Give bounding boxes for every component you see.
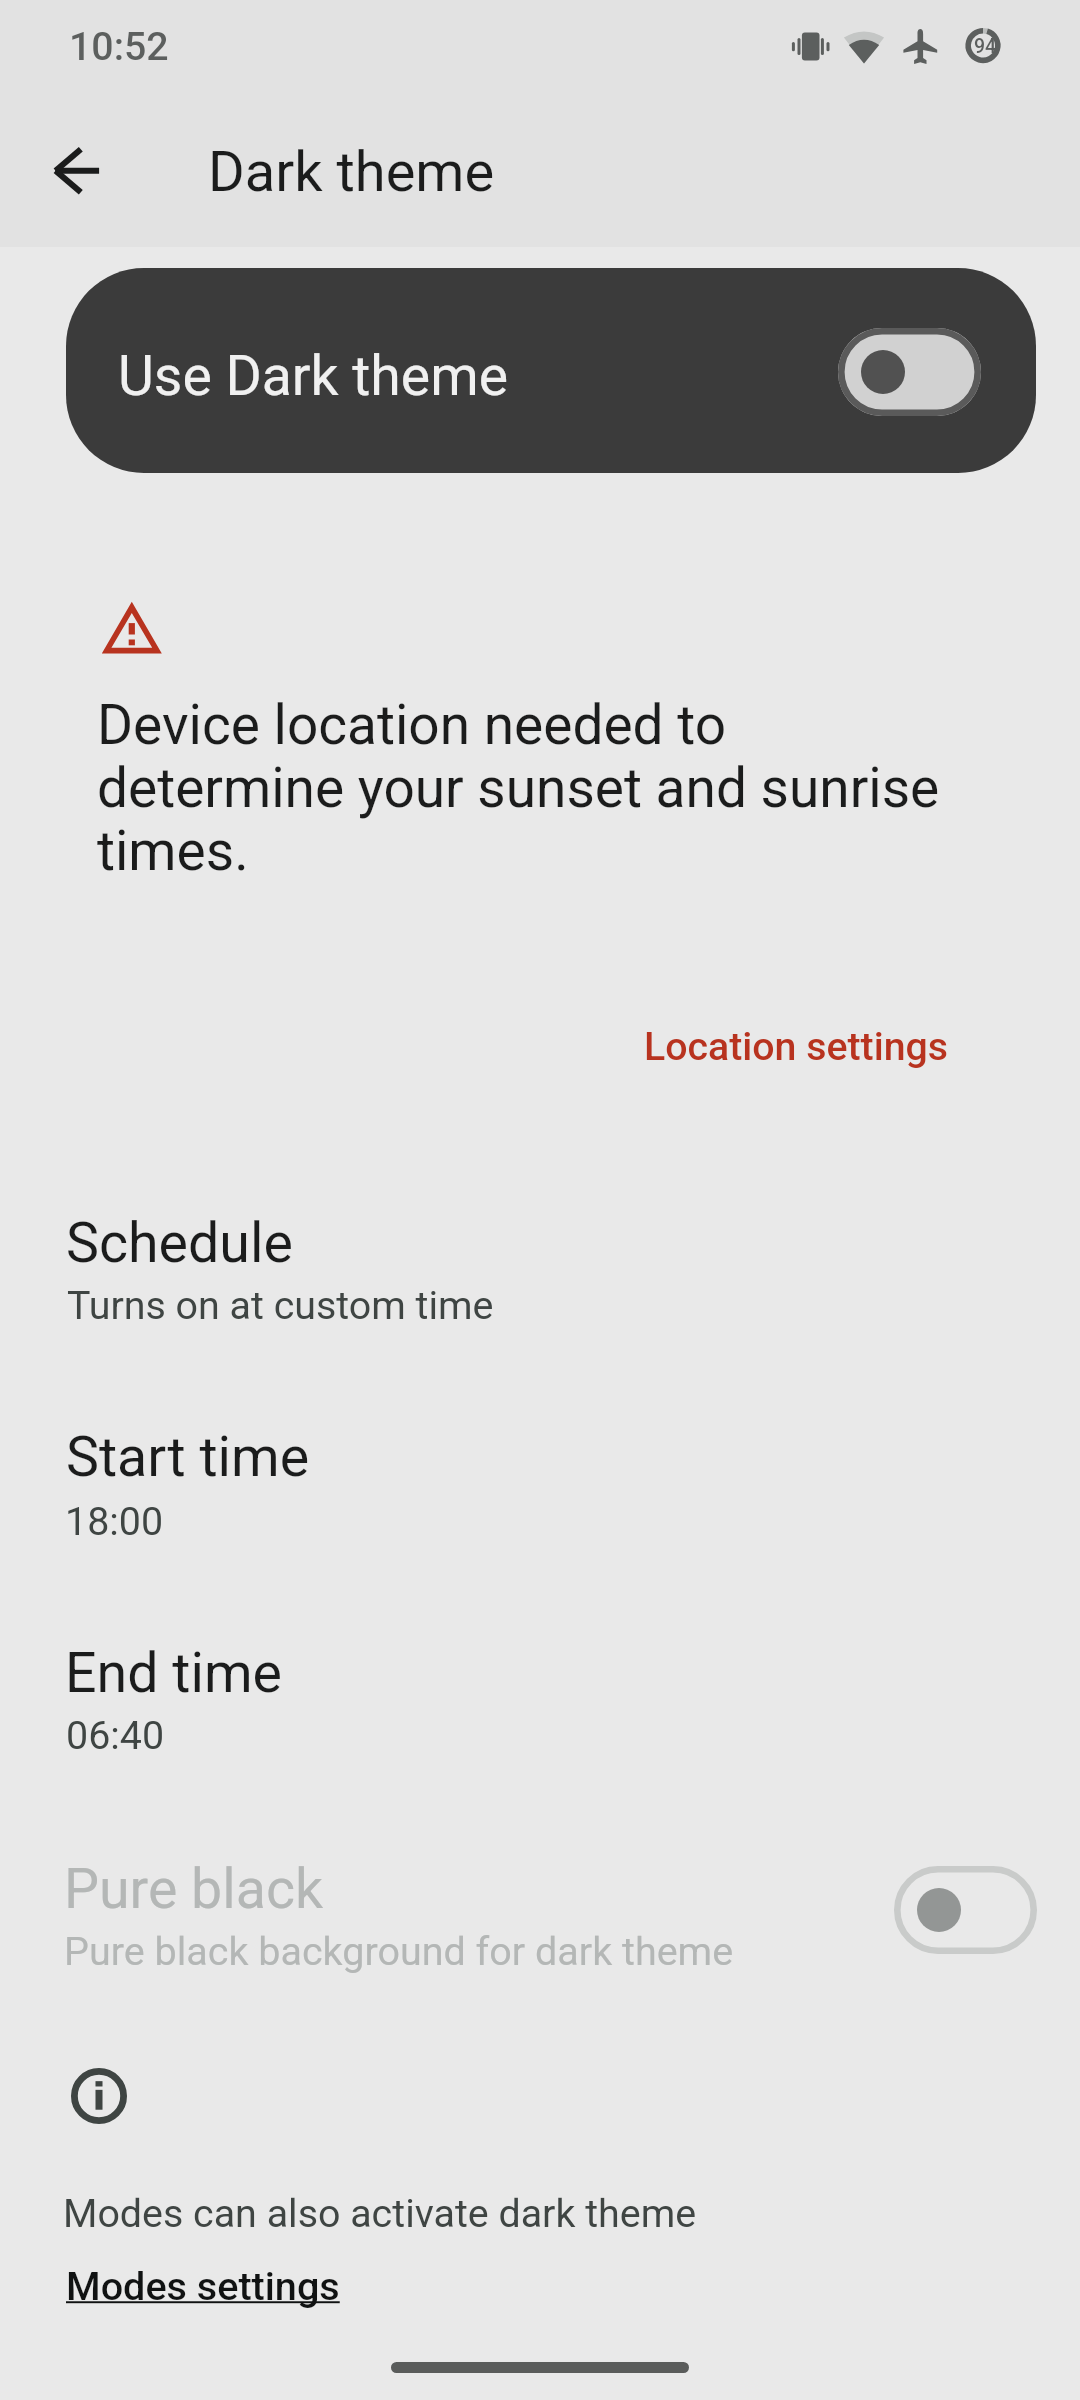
staticText: 10:52 [69,24,169,70]
staticText: Turns on at custom time [67,1282,494,1328]
button[interactable]: Use Dark theme, off [838,328,981,416]
button[interactable]: Pure black, off [894,1866,1037,1954]
staticText: Modes settings [66,2263,340,2309]
button[interactable]: Back [43,139,107,203]
staticText: Pure black background for dark theme [64,1928,734,1974]
button[interactable]: Modes settings [58,2252,348,2322]
staticText: Device location needed to determine your… [97,693,947,884]
staticText: Pure black [64,1857,324,1922]
staticText: Use Dark theme [118,344,508,409]
staticText: Dark theme [208,139,495,205]
button[interactable]: Pure black [0,1830,1080,2005]
button[interactable]: Location settings [622,1005,970,1089]
staticText: 18:00 [65,1498,164,1544]
staticText: 94 [974,35,997,58]
staticText: Location settings [644,1024,949,1070]
button[interactable]: End time [0,1600,1080,1775]
button[interactable]: Schedule [0,1170,1080,1345]
staticText: Schedule [66,1211,293,1276]
staticText: Modes can also activate dark theme [63,2190,697,2236]
button[interactable]: Start time [0,1385,1080,1560]
staticText: 06:40 [66,1712,165,1758]
staticText: End time [65,1641,283,1706]
button[interactable]: Use Dark theme [66,268,1036,473]
staticText: Start time [66,1425,310,1490]
